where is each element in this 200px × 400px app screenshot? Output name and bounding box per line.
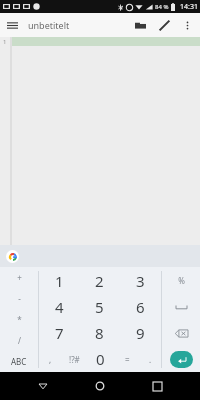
button[interactable]: * (0, 309, 38, 330)
button[interactable]: % (162, 267, 200, 294)
button[interactable]: Space (162, 294, 200, 320)
staticText: !?# (69, 354, 80, 365)
staticText: % (178, 275, 185, 286)
staticText: 1 (55, 271, 64, 291)
button[interactable]: 4 (39, 294, 79, 320)
staticText: ABC (11, 356, 27, 367)
staticText: 5 (95, 297, 104, 317)
staticText: 7 (55, 323, 64, 343)
staticText: / (18, 335, 21, 346)
staticText: - (18, 293, 21, 304)
button[interactable]: Open folder (128, 13, 152, 37)
button[interactable]: , (39, 346, 62, 372)
staticText: 0 (96, 349, 105, 369)
staticText: 84 % (155, 3, 169, 11)
staticText: unbetitelt (28, 19, 70, 31)
button[interactable]: 7 (39, 320, 79, 346)
button[interactable]: = (115, 346, 139, 372)
button[interactable]: Back (29, 372, 57, 400)
staticText: . (149, 354, 152, 365)
button[interactable]: - (0, 288, 38, 309)
staticText: + (17, 272, 22, 283)
staticText: 6 (136, 297, 145, 317)
button[interactable]: ABC (0, 351, 38, 372)
button[interactable]: 3 (120, 267, 161, 294)
staticText: 14:31 (180, 2, 198, 12)
staticText: = (125, 354, 130, 365)
button[interactable]: Edit (152, 13, 176, 37)
button[interactable]: 9 (120, 320, 161, 346)
button[interactable]: 0 (86, 346, 115, 372)
button[interactable]: + (0, 267, 38, 288)
button[interactable]: 6 (120, 294, 161, 320)
staticText: 8 (95, 323, 104, 343)
button[interactable]: 8 (79, 320, 120, 346)
button[interactable]: !?# (62, 346, 86, 372)
staticText: 4 (55, 297, 64, 317)
staticText: * (17, 314, 22, 325)
staticText: 9 (136, 323, 145, 343)
button[interactable]: Google (6, 250, 19, 263)
button[interactable]: Backspace (162, 320, 200, 346)
button[interactable]: Enter (170, 351, 193, 368)
button[interactable]: Menu (0, 13, 24, 37)
staticText: , (49, 354, 52, 365)
staticText: 2 (95, 271, 104, 291)
staticText: 3 (136, 271, 145, 291)
button[interactable]: More options (176, 14, 198, 36)
staticText: 1 (3, 38, 7, 46)
button[interactable]: Home (86, 372, 114, 400)
button[interactable]: / (0, 330, 38, 351)
button[interactable]: 2 (79, 267, 120, 294)
button[interactable]: 1 (39, 267, 79, 294)
button[interactable]: Recents (143, 372, 171, 400)
button[interactable]: 5 (79, 294, 120, 320)
